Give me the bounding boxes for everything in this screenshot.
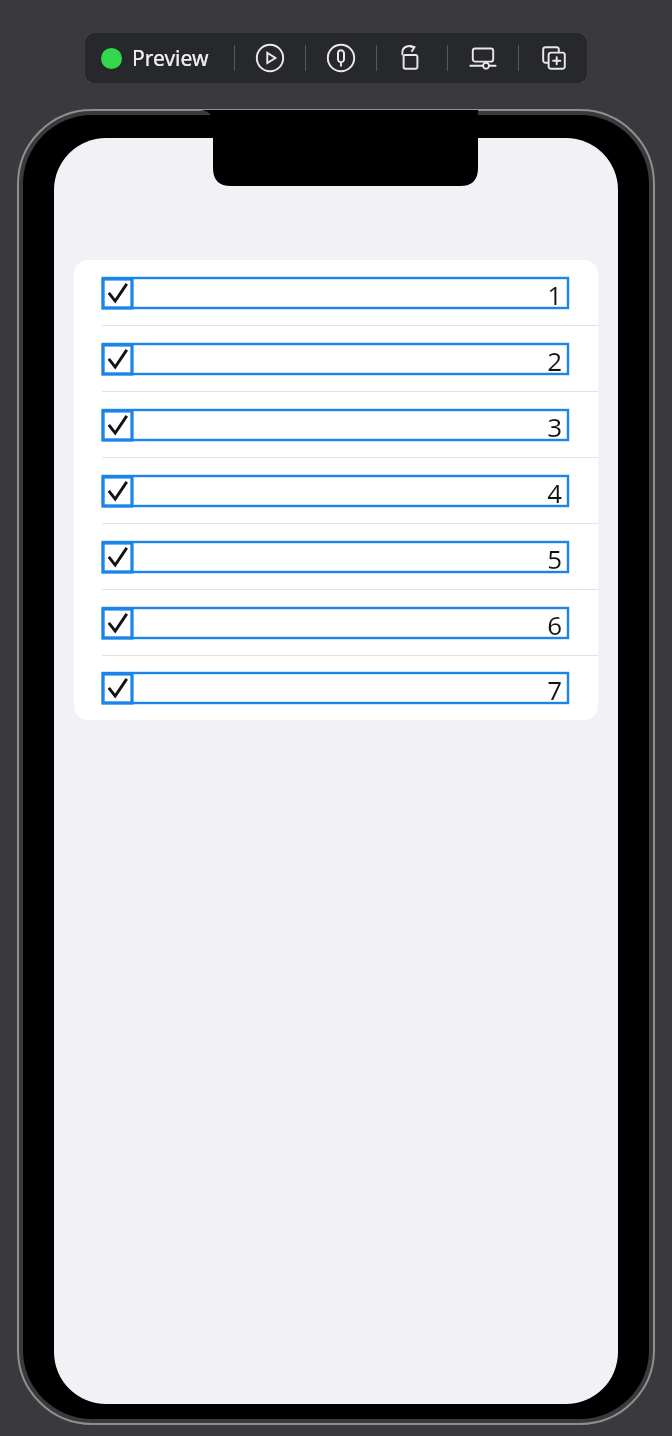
button[interactable]: Preview xyxy=(84,32,234,84)
button[interactable]: 3 xyxy=(74,392,598,457)
staticText: 2 xyxy=(547,343,562,373)
button[interactable]: Live inspect xyxy=(306,32,376,84)
staticText: 7 xyxy=(547,672,562,702)
staticText: 5 xyxy=(547,541,562,571)
button[interactable]: Display settings xyxy=(448,32,518,84)
button[interactable]: 4 xyxy=(74,458,598,523)
button[interactable]: 7 xyxy=(74,656,598,720)
button[interactable]: 1 xyxy=(74,260,598,325)
button[interactable]: 2 xyxy=(74,326,598,391)
staticText: Preview xyxy=(132,44,209,73)
button[interactable]: Run preview xyxy=(235,32,305,84)
staticText: 3 xyxy=(547,409,562,439)
staticText: 4 xyxy=(547,475,562,505)
button[interactable]: Rotate device xyxy=(377,32,447,84)
staticText: 1 xyxy=(547,277,562,307)
button[interactable]: Add variant xyxy=(519,32,588,84)
button[interactable]: 6 xyxy=(74,590,598,655)
staticText: 6 xyxy=(547,607,562,637)
button[interactable]: 5 xyxy=(74,524,598,589)
